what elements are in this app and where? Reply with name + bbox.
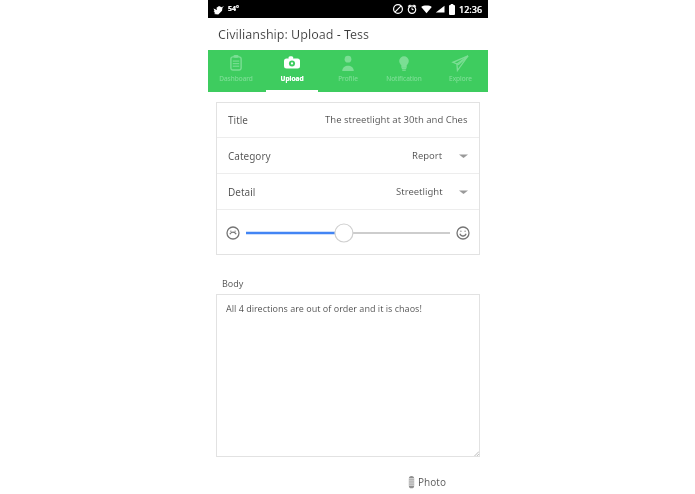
staticText: Detail bbox=[228, 185, 256, 199]
button[interactable]: Unhappy bbox=[216, 210, 480, 255]
button[interactable]: Explore bbox=[432, 50, 488, 92]
staticText: Streetlight bbox=[396, 185, 443, 198]
staticText: Body bbox=[222, 277, 244, 289]
staticText: Photo bbox=[418, 475, 446, 489]
staticText: All 4 directions are out of order and it… bbox=[226, 302, 422, 314]
staticText: Civilianship: Upload - Tess bbox=[218, 26, 370, 43]
other: Happy bbox=[456, 226, 470, 240]
staticText: Title bbox=[228, 113, 248, 127]
button[interactable]: Notification bbox=[376, 50, 432, 92]
button[interactable]: Title bbox=[216, 102, 480, 137]
staticText: 54° bbox=[228, 4, 239, 14]
staticText: 12:36 bbox=[459, 3, 483, 15]
staticText: The streetlight at 30th and Ches bbox=[325, 113, 468, 126]
staticText: Notification bbox=[386, 74, 422, 83]
staticText: Profile bbox=[338, 74, 358, 83]
other: Unhappy bbox=[226, 226, 240, 240]
staticText: Dashboard bbox=[219, 74, 253, 83]
button[interactable]: Category bbox=[216, 138, 480, 173]
button[interactable]: Profile bbox=[320, 50, 376, 92]
staticText: Upload bbox=[280, 74, 304, 83]
button[interactable]: All 4 directions are out of order and it… bbox=[216, 294, 480, 457]
staticText: Category bbox=[228, 149, 271, 163]
staticText: Explore bbox=[449, 74, 472, 83]
button[interactable]: Upload bbox=[264, 50, 320, 92]
button[interactable]: Photo bbox=[404, 471, 450, 493]
staticText: Report bbox=[412, 149, 443, 162]
button[interactable]: Dashboard bbox=[208, 50, 264, 92]
button[interactable]: Detail bbox=[216, 174, 480, 209]
